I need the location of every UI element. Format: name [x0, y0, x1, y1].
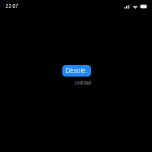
button[interactable]: Désolé. — [62, 65, 91, 77]
staticText: Désolé. — [66, 67, 88, 74]
staticText: Distribué — [75, 81, 91, 85]
staticText: 22:07 — [6, 4, 18, 9]
